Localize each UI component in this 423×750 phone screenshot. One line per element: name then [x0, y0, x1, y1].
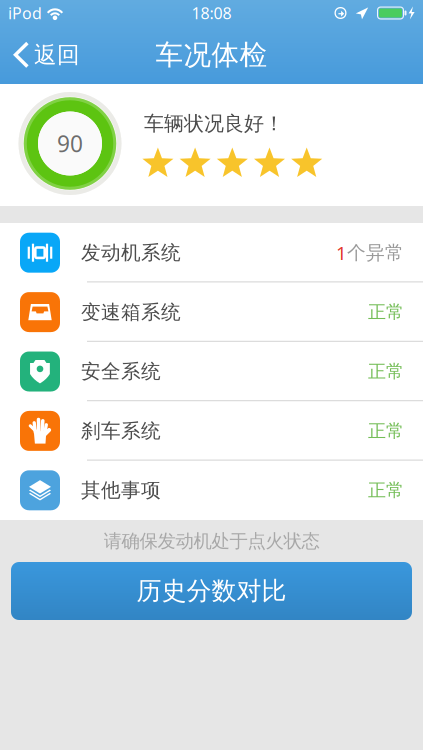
staticText: 发动机系统	[81, 240, 181, 265]
staticText: 正常	[368, 360, 404, 383]
staticText: iPod	[8, 2, 42, 24]
staticText: 90	[57, 128, 83, 159]
staticText: 正常	[368, 479, 404, 502]
staticText: 请确保发动机处于点火状态	[103, 529, 319, 553]
staticText: 车况体检	[155, 38, 267, 72]
staticText: 18:08	[191, 2, 231, 24]
staticText: 个异常	[347, 241, 404, 264]
button[interactable]: 安全系统	[0, 342, 423, 401]
staticText: 正常	[368, 420, 404, 442]
staticText: 其他事项	[81, 478, 161, 503]
button[interactable]: 刹车系统	[0, 401, 423, 461]
button[interactable]: 历史分数对比	[11, 562, 412, 620]
staticText: 正常	[368, 301, 404, 323]
button[interactable]: 返回	[0, 32, 90, 78]
staticText: 返回	[34, 41, 80, 69]
staticText: 车辆状况良好！	[144, 111, 284, 136]
staticText: 刹车系统	[81, 419, 161, 443]
staticText: 安全系统	[81, 359, 161, 384]
button[interactable]: 变速箱系统	[0, 282, 423, 342]
button[interactable]: 发动机系统	[0, 223, 423, 282]
staticText: 历史分数对比	[136, 575, 286, 607]
staticText: 1	[336, 240, 347, 265]
button[interactable]: 其他事项	[0, 461, 423, 520]
staticText: 变速箱系统	[81, 300, 181, 324]
